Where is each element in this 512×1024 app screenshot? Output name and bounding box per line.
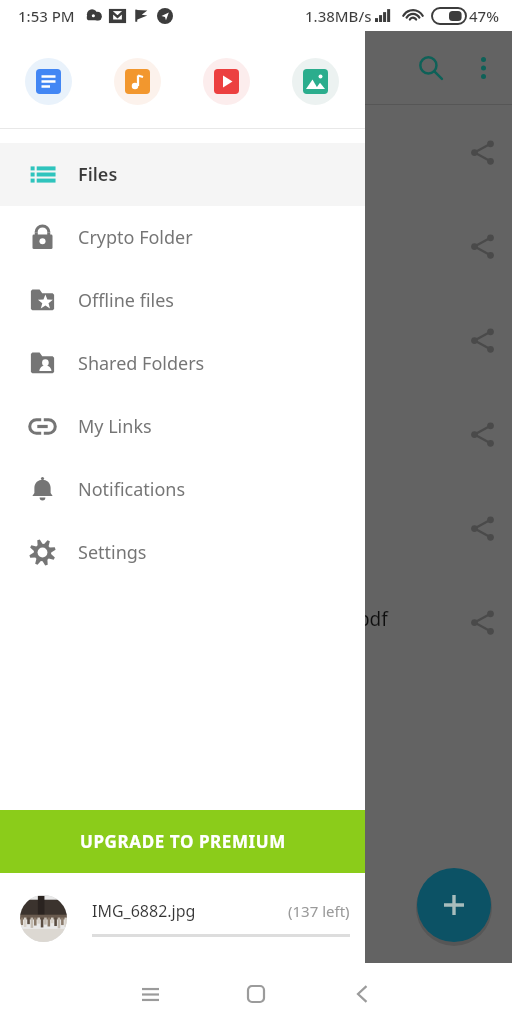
staticText: Settings [78, 540, 147, 565]
button[interactable]: Share [460, 600, 504, 644]
button[interactable]: Share [460, 130, 504, 174]
button[interactable]: Share [0, 199, 512, 293]
staticText: 1.38MB/s [305, 6, 372, 26]
button[interactable]: Share [460, 224, 504, 268]
button[interactable]: Share [0, 293, 512, 387]
staticText: My Links [78, 414, 152, 439]
staticText: 1:53 PM [18, 6, 75, 26]
button[interactable]: Share [460, 318, 504, 362]
staticText: Annual_Report.pdf [221, 606, 388, 632]
button[interactable]: Home [232, 970, 280, 1018]
button[interactable]: My Links [0, 395, 365, 458]
button[interactable]: Files [0, 143, 365, 206]
staticText: Shared Folders [78, 351, 205, 376]
button[interactable]: Settings [0, 521, 365, 584]
button[interactable]: Images [292, 58, 339, 105]
button[interactable]: Video [203, 58, 250, 105]
button[interactable]: Share [460, 412, 504, 456]
button[interactable]: Share [0, 481, 512, 575]
button[interactable]: More options [461, 46, 505, 90]
staticText: Files [78, 162, 118, 187]
button[interactable]: Search [407, 44, 455, 92]
button[interactable]: Back [338, 970, 386, 1018]
button[interactable]: Share [0, 387, 512, 481]
staticText: IMG_6882.jpg [92, 900, 196, 922]
button[interactable]: Annual_Report.pdf [0, 575, 512, 669]
button[interactable]: Recents [126, 970, 174, 1018]
button[interactable]: Documents [25, 58, 72, 105]
button[interactable]: Crypto Folder [0, 206, 365, 269]
button[interactable]: IMG_6882.jpg [0, 873, 365, 963]
staticText: Crypto Folder [78, 225, 193, 250]
button[interactable]: Shared Folders [0, 332, 365, 395]
staticText: Notifications [78, 477, 186, 502]
staticText: (137 left) [288, 901, 350, 921]
button[interactable]: Add [417, 868, 491, 942]
button[interactable]: Notifications [0, 458, 365, 521]
button[interactable]: Offline files [0, 269, 365, 332]
button[interactable]: UPGRADE TO PREMIUM [0, 810, 365, 873]
staticText: Offline files [78, 288, 174, 313]
staticText: UPGRADE TO PREMIUM [80, 830, 286, 853]
button[interactable]: Audio [114, 58, 161, 105]
button[interactable]: Share [0, 105, 512, 199]
button[interactable]: Share [460, 506, 504, 550]
staticText: 47% [469, 6, 499, 26]
